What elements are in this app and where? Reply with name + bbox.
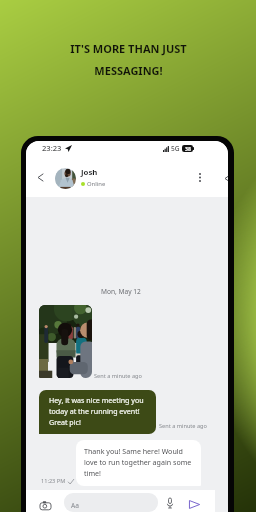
- button[interactable]: Hey, it was nice meeting you today at th…: [39, 390, 156, 434]
- staticText: IT'S MORE THAN JUST: [70, 41, 187, 56]
- staticText: 23:23: [42, 143, 62, 153]
- staticText: Josh: [81, 167, 98, 178]
- staticText: 5G: [171, 144, 180, 153]
- button[interactable]: Camera: [37, 497, 54, 512]
- button[interactable]: Voice message: [162, 495, 178, 511]
- button[interactable]: Photo from Josh: [39, 305, 92, 378]
- staticText: 38: [185, 145, 191, 152]
- button[interactable]: More options: [191, 169, 208, 186]
- staticText: 11:23 PM: [41, 477, 66, 485]
- staticText: Sent a minute ago: [94, 372, 142, 380]
- button[interactable]: Send: [186, 496, 203, 512]
- staticText: Aa: [71, 501, 79, 510]
- button[interactable]: Back: [31, 168, 49, 186]
- staticText: Mon, May 12: [101, 287, 141, 296]
- button[interactable]: Thank you! Same here! Would love to run …: [76, 440, 201, 486]
- staticText: Thank you! Same here! Would love to run …: [84, 446, 192, 478]
- staticText: Hey, it was nice meeting you today at th…: [49, 395, 145, 427]
- staticText: Sent a minute ago: [159, 422, 207, 430]
- staticText: Online: [87, 180, 106, 188]
- button[interactable]: Aa: [64, 493, 158, 512]
- staticText: MESSAGING!: [94, 63, 163, 78]
